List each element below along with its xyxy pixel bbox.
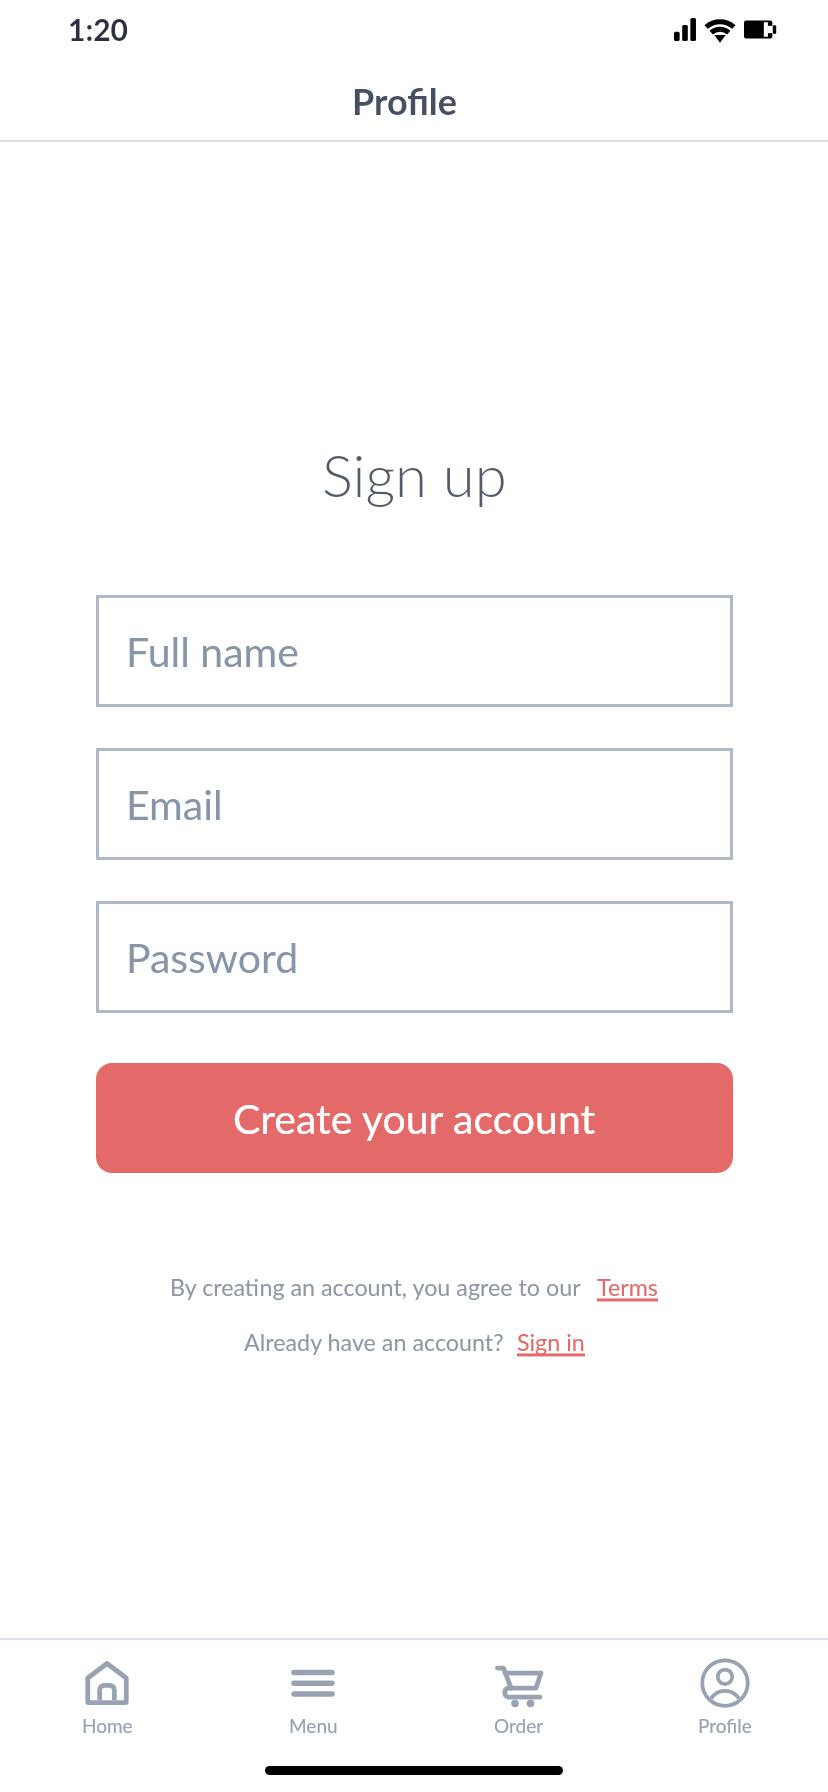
staticText: Already have an account? bbox=[244, 1328, 504, 1356]
button[interactable]: Terms bbox=[597, 1273, 658, 1301]
other: Battery bbox=[744, 18, 776, 41]
button[interactable]: Home bbox=[4, 1649, 210, 1740]
button[interactable]: Profile bbox=[622, 1649, 828, 1740]
button[interactable]: Order bbox=[416, 1649, 622, 1740]
button[interactable]: Full name bbox=[96, 595, 733, 707]
staticText: Terms bbox=[597, 1273, 658, 1301]
staticText: Full name bbox=[126, 627, 299, 676]
staticText: Profile bbox=[352, 79, 457, 122]
staticText: Email bbox=[126, 780, 223, 829]
other: Wi-Fi bbox=[705, 18, 735, 41]
staticText: Password bbox=[126, 933, 299, 982]
staticText: Order bbox=[494, 1714, 544, 1737]
staticText: Create your account bbox=[233, 1094, 596, 1143]
staticText: 1:20 bbox=[68, 11, 128, 47]
staticText: Sign up bbox=[322, 440, 507, 510]
button[interactable]: Password bbox=[96, 901, 733, 1013]
staticText: Profile bbox=[698, 1714, 752, 1737]
button[interactable]: Create your account bbox=[96, 1063, 733, 1173]
button[interactable]: Menu bbox=[210, 1649, 416, 1740]
staticText: By creating an account, you agree to our bbox=[170, 1273, 581, 1301]
staticText: Menu bbox=[289, 1714, 338, 1737]
staticText: Sign in bbox=[517, 1328, 585, 1356]
button[interactable]: Email bbox=[96, 748, 733, 860]
button[interactable]: Sign in bbox=[517, 1328, 585, 1356]
staticText: Home bbox=[82, 1714, 133, 1737]
other: Cellular signal bbox=[674, 18, 696, 41]
